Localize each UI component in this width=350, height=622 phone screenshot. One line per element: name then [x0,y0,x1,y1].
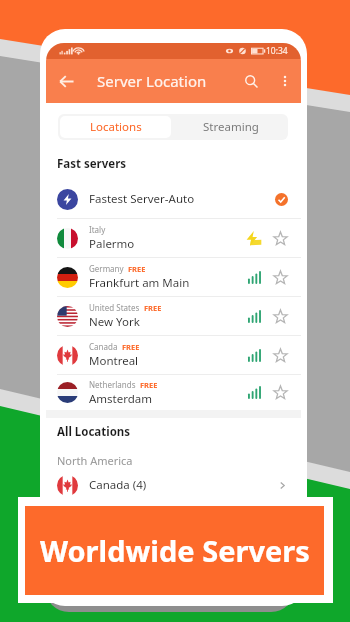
button[interactable]: Germany [46,258,301,296]
staticText: United States [89,302,140,313]
staticText: Canada [89,341,118,352]
staticText: Palermo [89,236,135,252]
button[interactable]: Locations [60,116,171,138]
staticText: FREE [122,342,140,352]
staticText: Worldwide Servers [40,531,310,570]
button[interactable]: More options [273,69,297,93]
staticText: 10:34 [266,45,288,57]
button[interactable]: United States [46,297,301,335]
button[interactable]: Italy [46,219,301,257]
button[interactable]: Back [52,67,80,95]
staticText: Fastest Server-Auto [89,191,195,207]
staticText: North America [57,453,133,468]
button[interactable]: Streaming [173,114,288,140]
staticText: Germany [89,263,124,274]
staticText: Streaming [203,119,259,135]
staticText: FREE [144,303,162,313]
staticText: Italy [89,224,106,235]
staticText: Server Location [97,71,207,91]
button[interactable]: Fastest Server-Auto [46,180,301,218]
staticText: New York [89,314,140,330]
staticText: FREE [128,264,146,274]
staticText: Fast servers [57,156,127,172]
button[interactable]: Search [237,67,265,95]
button[interactable]: Canada [46,336,301,374]
staticText: Locations [90,119,142,135]
staticText: Amsterdam [89,391,153,407]
staticText: Canada (4) [89,477,147,493]
button[interactable]: Canada (4) [46,468,301,502]
staticText: Netherlands [89,379,136,390]
button[interactable]: Netherlands [46,375,301,410]
staticText: Montreal [89,353,139,369]
staticText: All Locations [57,424,131,440]
staticText: Frankfurt am Main [89,275,190,291]
staticText: FREE [140,380,158,390]
